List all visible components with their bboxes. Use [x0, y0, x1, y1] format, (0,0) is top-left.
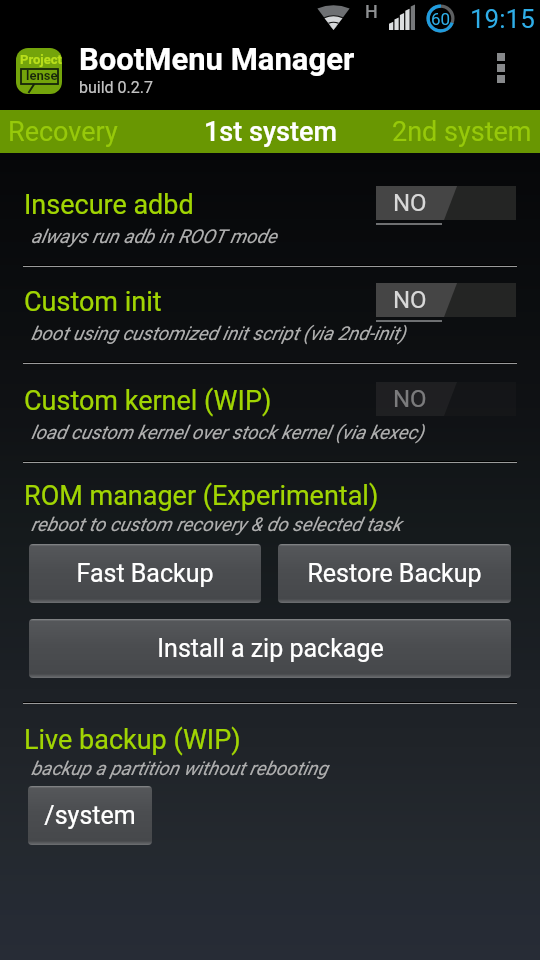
staticText: NO [393, 385, 427, 413]
staticText: lense [26, 68, 58, 83]
staticText: 2nd system [392, 116, 532, 148]
staticText: Recovery [8, 116, 118, 148]
button[interactable]: Insecure adbd [0, 153, 540, 267]
staticText: /system [44, 801, 136, 830]
staticText: Live backup (WIP) [24, 724, 241, 756]
button[interactable]: Custom init [0, 267, 540, 364]
staticText: Custom init [24, 286, 162, 318]
staticText: 1st system [204, 116, 338, 148]
button[interactable]: Restore Backup [278, 544, 511, 603]
staticText: H [365, 1, 378, 22]
button[interactable]: Install a zip package [29, 619, 511, 678]
staticText: 19:15 [470, 4, 535, 34]
staticText: always run adb in ROOT mode [31, 225, 277, 247]
button[interactable]: More options [480, 38, 534, 110]
staticText: Custom kernel (WIP) [24, 385, 272, 417]
button[interactable]: 2nd system [378, 110, 540, 153]
button[interactable]: /system [28, 786, 152, 845]
button[interactable]: Fast Backup [29, 544, 261, 603]
staticText: Install a zip package [157, 634, 384, 663]
staticText: Fast Backup [76, 559, 214, 588]
staticText: load custom kernel over stock kernel (vi… [31, 421, 424, 443]
staticText: boot using customized init script (via 2… [31, 322, 406, 344]
staticText: build 0.2.7 [79, 78, 153, 97]
staticText: reboot to custom recovery & do selected … [31, 513, 402, 535]
staticText: 60 [431, 9, 451, 29]
staticText: BootMenu Manager [79, 41, 355, 77]
staticText: backup a partition without rebooting [31, 757, 328, 779]
staticText: ROM manager (Experimental) [24, 480, 379, 512]
staticText: Insecure adbd [24, 189, 194, 221]
button[interactable]: 1st system [170, 110, 372, 153]
button[interactable]: Recovery [0, 110, 126, 153]
staticText: NO [393, 286, 427, 314]
staticText: Project [20, 52, 62, 67]
button[interactable]: Custom kernel (WIP) [0, 364, 540, 463]
staticText: NO [393, 189, 427, 217]
staticText: Restore Backup [307, 559, 482, 588]
